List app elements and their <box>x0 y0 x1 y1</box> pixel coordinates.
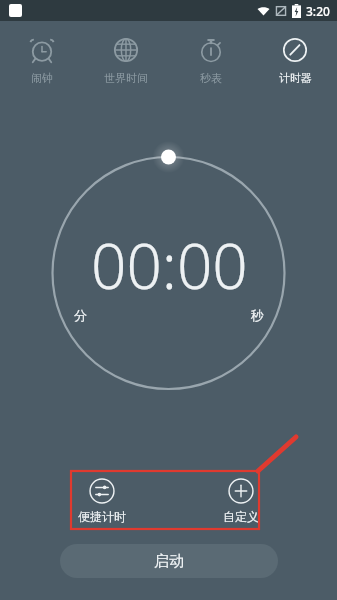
other: 便捷计时 <box>89 478 115 504</box>
staticText: 分 <box>74 307 87 323</box>
button[interactable]: 闹钟 <box>5 33 79 88</box>
staticText: 计时器 <box>279 71 312 85</box>
staticText: 启动 <box>154 552 184 571</box>
button[interactable]: 自定义 <box>217 476 265 526</box>
staticText: 便捷计时 <box>78 509 126 524</box>
staticText: 3:20 <box>306 3 330 19</box>
button[interactable]: 便捷计时 <box>72 476 132 526</box>
staticText: 秒表 <box>200 71 222 85</box>
staticText: 秒 <box>251 307 264 323</box>
button[interactable]: 启动 <box>60 544 278 578</box>
button[interactable]: 计时器 <box>258 33 332 88</box>
button[interactable]: 世界时间 <box>89 33 163 88</box>
staticText: 世界时间 <box>104 71 148 85</box>
staticText: 00:00 <box>91 223 248 307</box>
other: 自定义 <box>228 478 254 504</box>
staticText: 闹钟 <box>31 71 53 85</box>
button[interactable]: 秒表 <box>174 33 248 88</box>
staticText: 自定义 <box>223 509 259 524</box>
